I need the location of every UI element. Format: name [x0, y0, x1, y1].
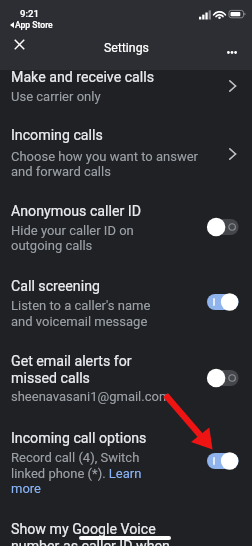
button[interactable]	[0, 276, 252, 351]
button[interactable]	[0, 200, 252, 276]
staticText: Show my Google Voice	[11, 521, 156, 538]
button[interactable]	[0, 126, 252, 200]
staticText: and forward calls	[11, 164, 111, 179]
staticText: Use carrier only	[11, 89, 101, 104]
staticText: Settings	[104, 41, 149, 55]
staticText: Hide your caller ID on	[11, 223, 134, 238]
staticText: Call screening	[11, 278, 100, 295]
staticText: more	[11, 481, 41, 496]
staticText: missed calls	[11, 370, 90, 387]
staticText: linked phone (*). Learn	[11, 466, 142, 481]
staticText: 9:21	[20, 8, 39, 19]
button[interactable]: More options	[221, 41, 243, 63]
staticText: outgoing calls	[11, 238, 93, 253]
staticText: Record call (4), Switch	[11, 450, 140, 465]
button[interactable]	[0, 509, 252, 546]
button[interactable]: Enabled	[207, 450, 239, 472]
staticText: Get email alerts for	[11, 353, 132, 370]
staticText: Anonymous caller ID	[11, 203, 141, 220]
button[interactable]: Enabled	[207, 291, 239, 313]
staticText: and voicemail message	[11, 314, 148, 329]
button[interactable]: Disabled	[207, 367, 239, 389]
staticText: sheenavasani1@gmail.com	[11, 389, 171, 404]
staticText: App Store	[15, 20, 53, 30]
button[interactable]	[0, 351, 252, 428]
button[interactable]: Close	[8, 33, 30, 55]
staticText: Incoming calls	[11, 127, 103, 144]
staticText: number as caller ID when	[11, 538, 170, 546]
button[interactable]	[0, 70, 252, 126]
button[interactable]	[0, 428, 252, 509]
staticText: Incoming call options	[11, 430, 147, 447]
button[interactable]: Disabled	[207, 216, 239, 238]
staticText: Listen to a caller's name	[11, 298, 151, 313]
staticText: Choose how you want to answer	[11, 149, 198, 164]
staticText: Make and receive calls	[11, 69, 155, 86]
